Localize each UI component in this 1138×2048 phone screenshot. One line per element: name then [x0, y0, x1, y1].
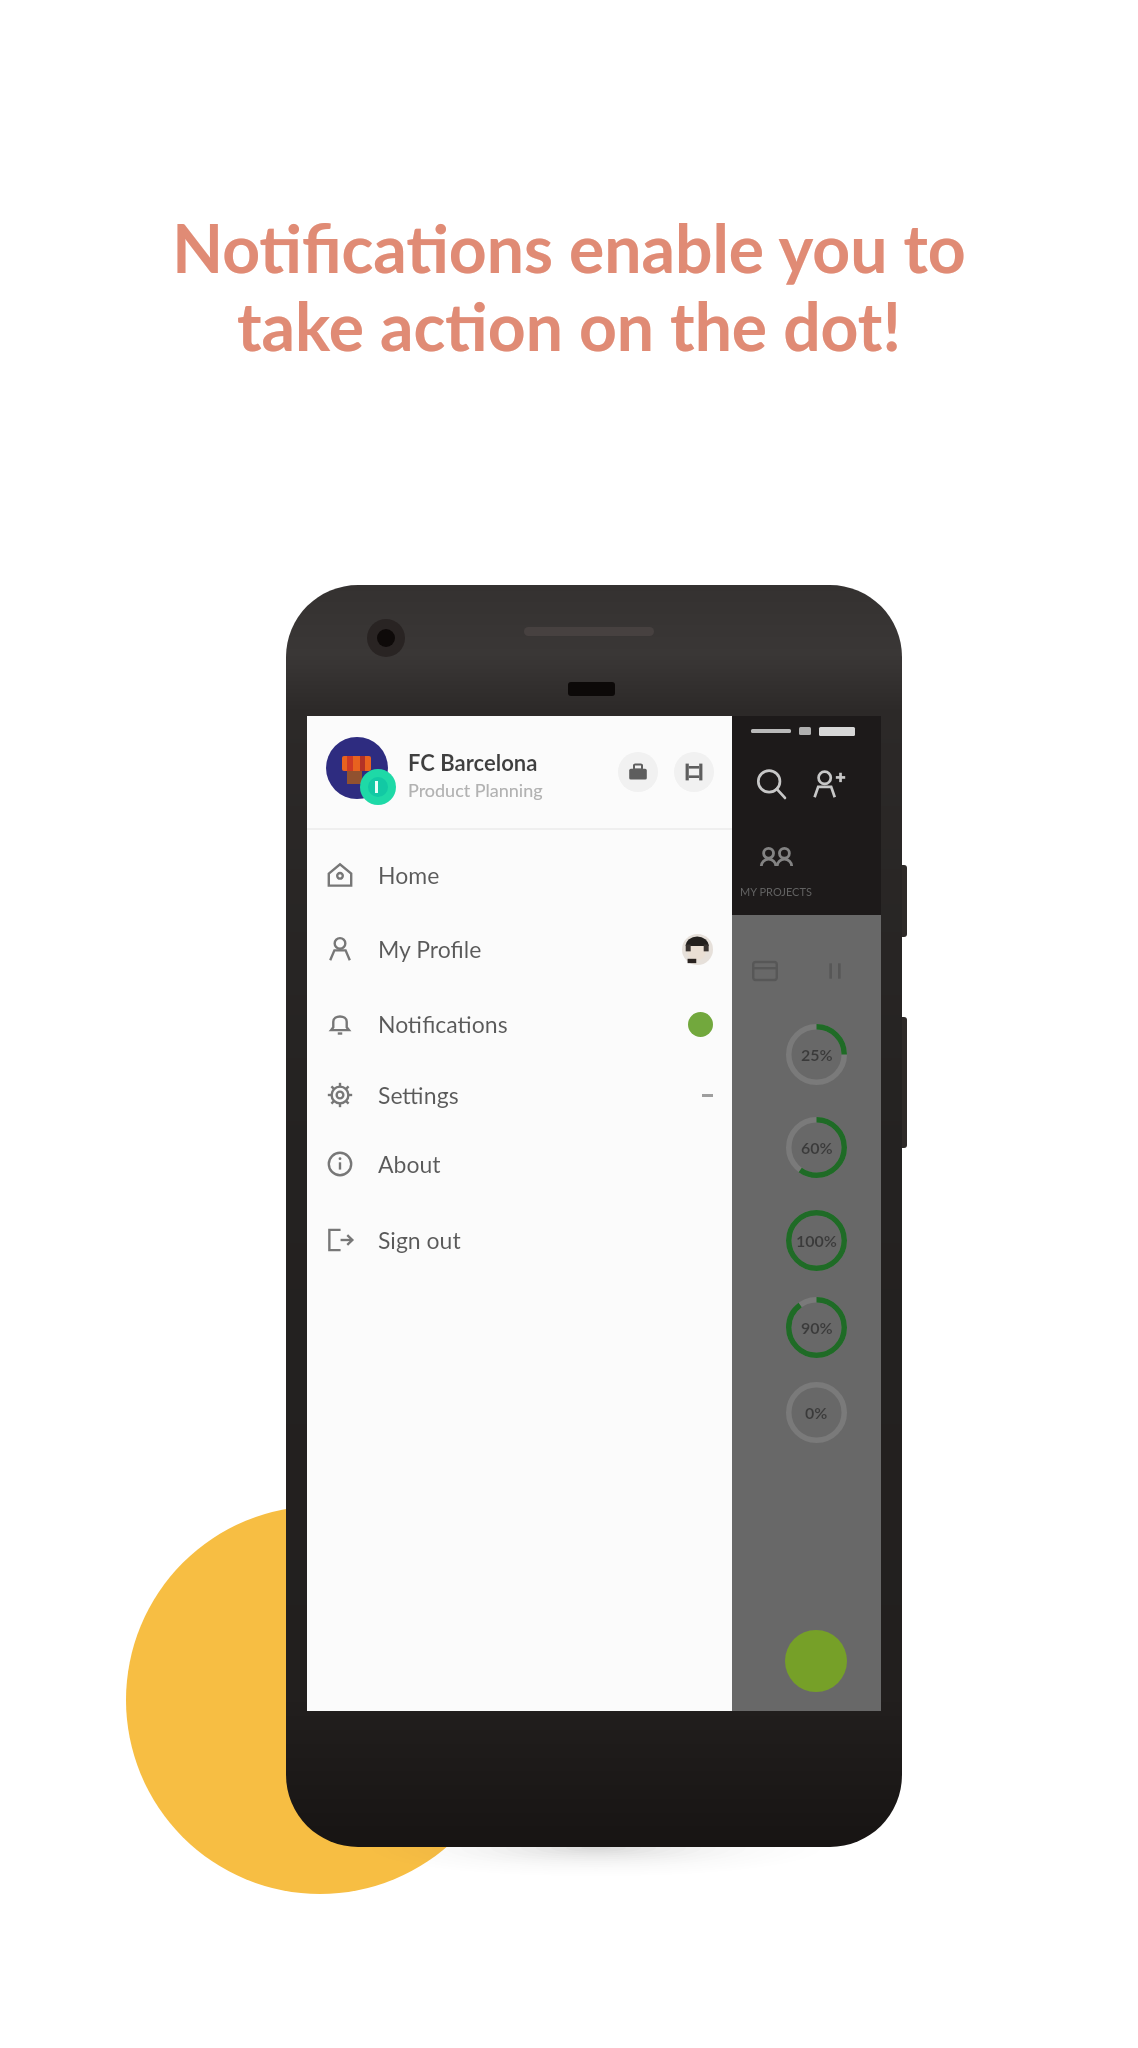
button[interactable]: Card view — [742, 948, 788, 994]
button[interactable]: MY PROJECTS — [731, 844, 821, 898]
button[interactable]: My Profile — [326, 912, 713, 986]
button[interactable]: About — [326, 1127, 713, 1201]
button[interactable]: Settings — [326, 1058, 713, 1132]
button[interactable]: Switch workspace — [674, 752, 714, 792]
button[interactable]: 100% — [333, 1194, 847, 1286]
button[interactable]: Home — [326, 838, 713, 912]
staticText: 100% — [796, 1231, 837, 1250]
staticText: FC Barcelona — [408, 749, 538, 775]
button[interactable]: 90% — [333, 1281, 847, 1373]
staticText: Settings — [378, 1081, 459, 1109]
button[interactable]: Add member — [798, 754, 860, 816]
button[interactable]: 60% — [333, 1101, 847, 1193]
staticText: Home — [378, 861, 440, 889]
button[interactable]: Sign out — [326, 1203, 713, 1277]
button[interactable]: FC Barcelona — [326, 716, 714, 828]
staticText: 25% — [801, 1045, 833, 1064]
staticText: Sign out — [378, 1226, 461, 1254]
button[interactable]: Search — [741, 754, 803, 816]
staticText: Notifications enable you to take action … — [172, 208, 966, 365]
staticText: My Profile — [378, 935, 482, 963]
button[interactable]: 25% — [333, 1008, 847, 1100]
button[interactable]: Add project — [785, 1630, 847, 1692]
staticText: 60% — [801, 1138, 833, 1157]
staticText: 90% — [801, 1318, 833, 1337]
staticText: About — [378, 1150, 441, 1178]
staticText: MY PROJECTS — [740, 885, 812, 898]
button[interactable]: 0% — [333, 1366, 847, 1458]
staticText: Product Planning — [408, 779, 543, 801]
staticText: 0% — [805, 1403, 828, 1422]
button[interactable]: Workspace — [618, 752, 658, 792]
button[interactable]: Column view — [812, 948, 858, 994]
button[interactable]: Notifications — [326, 987, 713, 1061]
staticText: Notifications — [378, 1010, 508, 1038]
